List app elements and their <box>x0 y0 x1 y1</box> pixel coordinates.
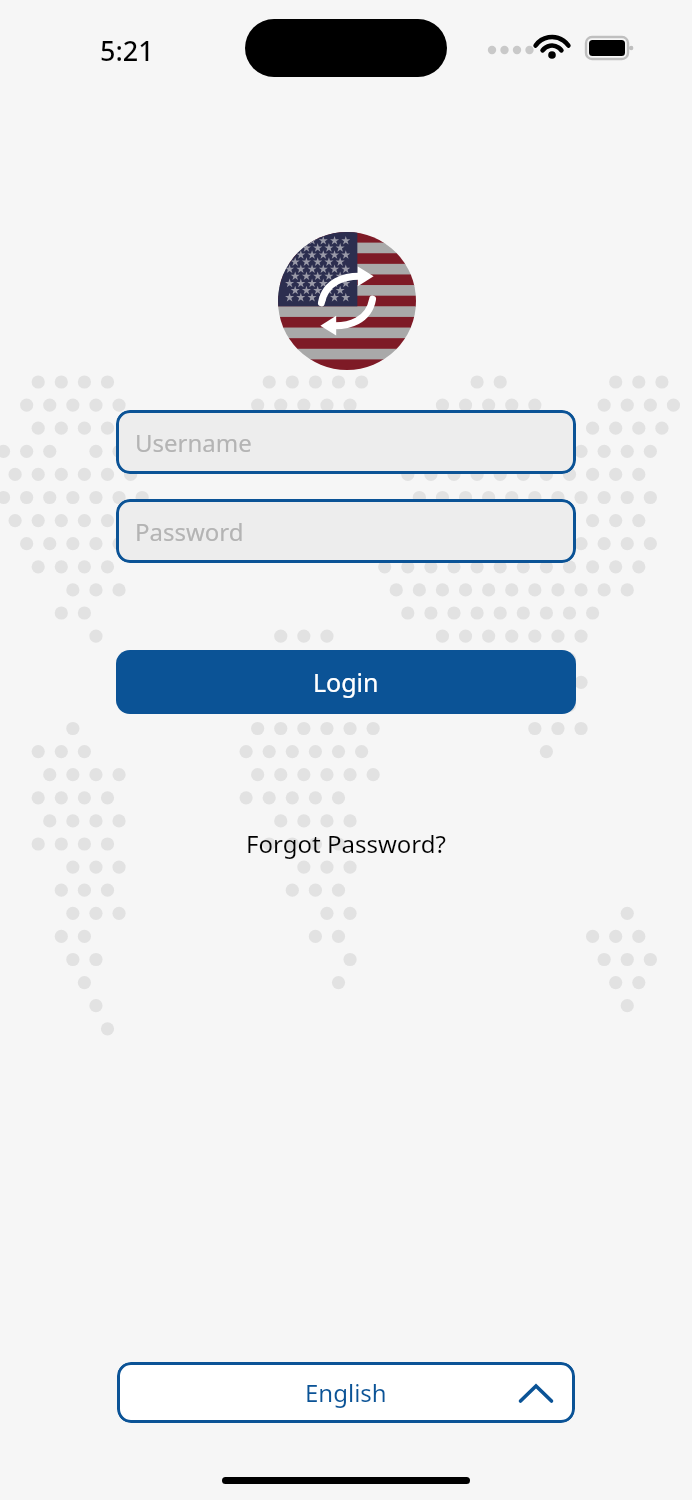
staticText: Username <box>135 426 252 459</box>
staticText: English <box>305 1376 387 1409</box>
button[interactable]: Login <box>116 650 576 714</box>
staticText: Password <box>135 515 244 548</box>
button[interactable]: Forgot Password? <box>116 827 576 860</box>
button[interactable]: English <box>117 1362 575 1423</box>
staticText: Login <box>313 665 379 699</box>
button[interactable]: Password <box>116 499 576 563</box>
other: App logo <box>277 231 417 371</box>
staticText: Forgot Password? <box>246 827 446 860</box>
staticText: 5:21 <box>100 32 154 69</box>
button[interactable]: Username <box>116 410 576 474</box>
